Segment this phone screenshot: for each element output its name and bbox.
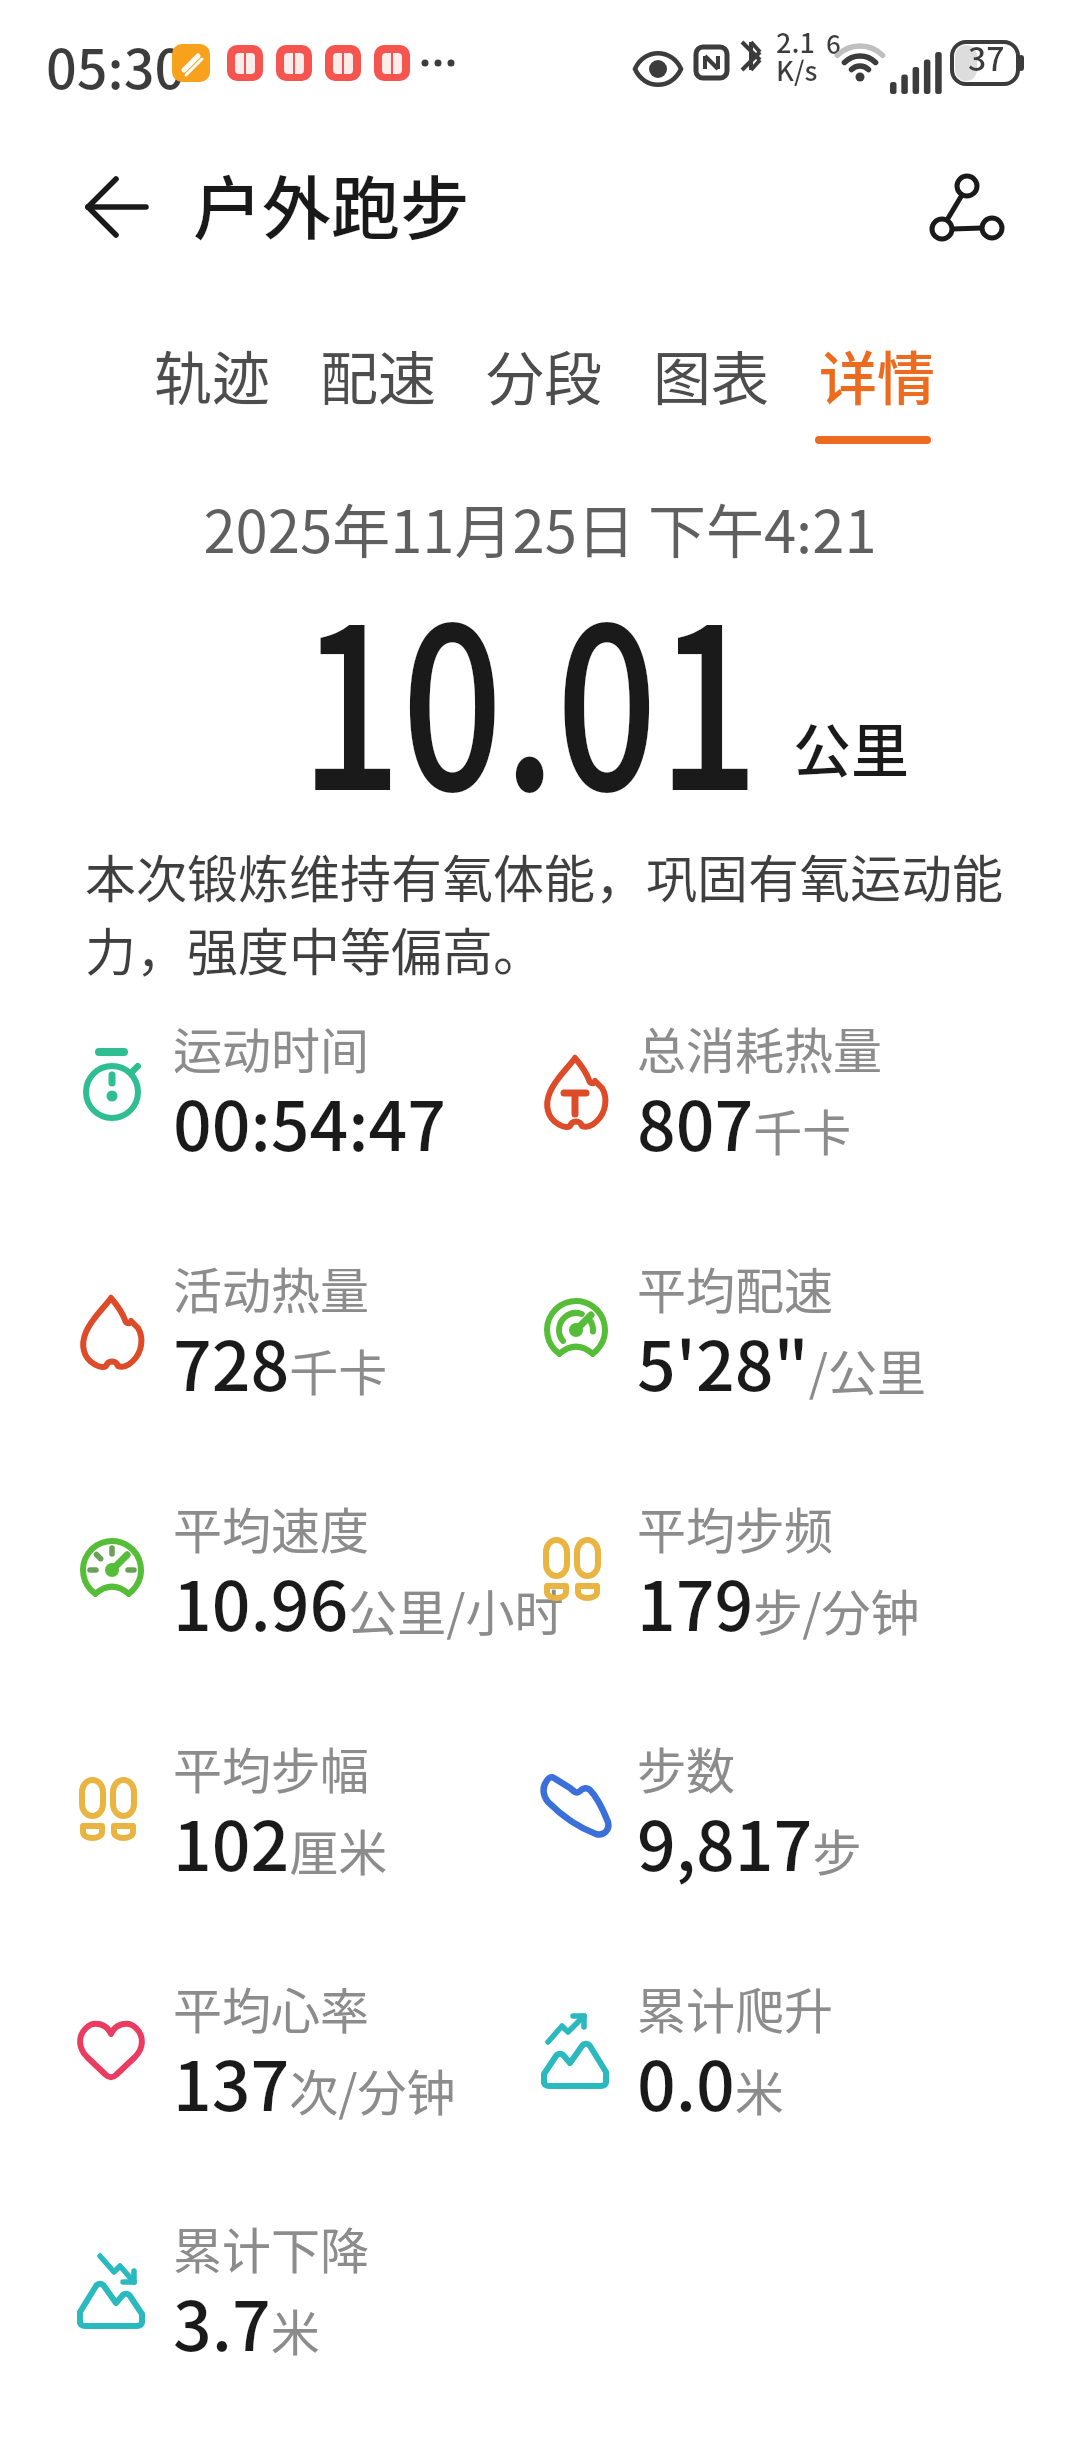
staticText: 3.7米 — [173, 2272, 320, 2370]
staticText: 运动时间 — [173, 1012, 370, 1083]
staticText: 力，强度中等偏高。 — [85, 912, 545, 986]
staticText: 详情 — [819, 333, 936, 417]
staticText: 10.96公里/小时 — [173, 1552, 564, 1650]
staticText: K/s — [776, 50, 818, 89]
staticText: 平均配速 — [637, 1252, 834, 1323]
staticText: 05:30 — [46, 26, 186, 104]
staticText: 累计下降 — [173, 2212, 370, 2283]
staticText: 102厘米 — [173, 1792, 388, 1890]
staticText: 0.0米 — [637, 2032, 784, 2130]
staticText: 累计爬升 — [637, 1972, 834, 2043]
staticText: 2.1 — [776, 22, 815, 61]
staticText: 活动热量 — [173, 1252, 370, 1323]
staticText: 37 — [968, 34, 1005, 80]
staticText: 2025年11月25日 下午4:21 — [0, 486, 1080, 570]
staticText: 10.01 — [300, 530, 759, 854]
staticText: 平均步幅 — [173, 1732, 370, 1803]
staticText: 步数 — [637, 1732, 736, 1803]
staticText: 179步/分钟 — [637, 1552, 920, 1650]
staticText: 配速 — [320, 333, 437, 417]
staticText: 平均心率 — [173, 1972, 370, 2043]
staticText: 本次锻炼维持有氧体能，巩固有氧运动能 — [85, 839, 1004, 913]
staticText: 5'28"/公里 — [637, 1312, 926, 1410]
staticText: 平均步频 — [637, 1492, 834, 1563]
staticText: 728千卡 — [173, 1312, 388, 1410]
staticText: 807千卡 — [637, 1072, 852, 1170]
staticText: 137次/分钟 — [173, 2032, 456, 2130]
staticText: 9,817步 — [637, 1792, 862, 1890]
staticText: 总消耗热量 — [637, 1012, 883, 1083]
staticText: 图表 — [653, 333, 770, 417]
staticText: 平均速度 — [173, 1492, 370, 1563]
staticText: 户外跑步 — [193, 154, 469, 254]
staticText: 轨迹 — [154, 333, 271, 417]
staticText: 00:54:47 — [173, 1072, 447, 1170]
staticText: 分段 — [486, 333, 603, 417]
staticText: 公里 — [793, 705, 910, 789]
staticText: 6 — [826, 24, 841, 62]
